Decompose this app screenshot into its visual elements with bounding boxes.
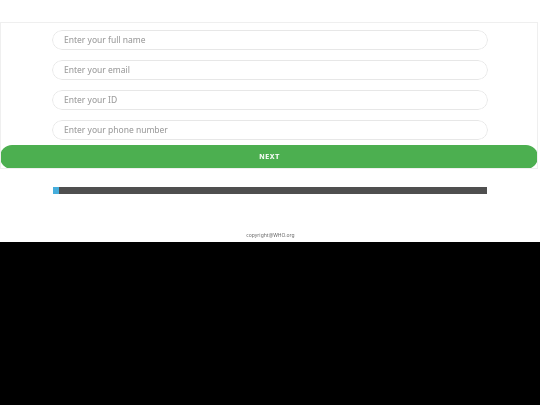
staticText: Enter your ID bbox=[64, 94, 118, 106]
staticText: Enter your phone number bbox=[64, 124, 168, 136]
button[interactable]: Enter your email bbox=[52, 60, 488, 80]
button[interactable]: Enter your phone number bbox=[52, 120, 488, 140]
button[interactable]: NEXT bbox=[0, 145, 538, 169]
staticText: Enter your full name bbox=[64, 34, 146, 46]
staticText: NEXT bbox=[259, 152, 280, 162]
staticText: copyright@WHO.org bbox=[246, 232, 295, 239]
button[interactable]: Enter your ID bbox=[52, 90, 488, 110]
button[interactable]: Enter your full name bbox=[52, 30, 488, 50]
staticText: Enter your email bbox=[64, 64, 130, 76]
